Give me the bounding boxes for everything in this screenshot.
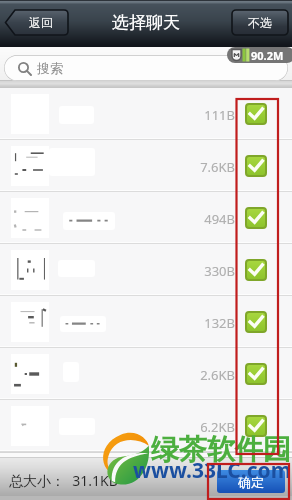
staticText: 7.6KB bbox=[181, 158, 235, 192]
button[interactable]: Selected bbox=[246, 364, 266, 384]
button[interactable]: Memory usage bbox=[227, 47, 292, 63]
button[interactable]: Selected bbox=[246, 156, 266, 176]
staticText: 2.6KB bbox=[181, 366, 235, 400]
staticText: 111B bbox=[181, 106, 235, 140]
staticText: 不选 bbox=[248, 15, 272, 30]
button[interactable]: 330B bbox=[0, 244, 292, 296]
button[interactable]: 搜索 bbox=[4, 55, 288, 81]
button[interactable]: 返回 bbox=[4, 10, 68, 35]
button[interactable]: 2.6KB bbox=[0, 348, 292, 400]
button[interactable]: 494B bbox=[0, 192, 292, 244]
button[interactable]: 7.6KB bbox=[0, 140, 292, 192]
button[interactable]: 6.2KB bbox=[0, 400, 292, 452]
staticText: 返回 bbox=[29, 15, 53, 30]
button[interactable]: Selected bbox=[246, 208, 266, 228]
staticText: 6.2KB bbox=[181, 418, 235, 452]
button[interactable]: Selected bbox=[246, 416, 266, 436]
button[interactable]: 132B bbox=[0, 296, 292, 348]
button[interactable]: 111B bbox=[0, 88, 292, 140]
staticText: 总大小： 31.1KB bbox=[9, 471, 118, 490]
staticText: www.33LC.com bbox=[133, 456, 292, 485]
button[interactable]: 确定 bbox=[217, 470, 285, 493]
staticText: 搜索 bbox=[37, 60, 63, 76]
staticText: 确定 bbox=[238, 474, 264, 490]
button[interactable]: Selected bbox=[246, 104, 266, 124]
staticText: 选择聊天 bbox=[112, 12, 180, 33]
staticText: 90.2M bbox=[251, 48, 284, 63]
staticText: 494B bbox=[181, 210, 235, 244]
staticText: 绿茶软件园 bbox=[151, 432, 291, 467]
button[interactable]: 不选 bbox=[232, 10, 288, 35]
staticText: 132B bbox=[181, 314, 235, 348]
button[interactable]: Selected bbox=[246, 260, 266, 280]
button[interactable]: Selected bbox=[246, 312, 266, 332]
staticText: 330B bbox=[181, 262, 235, 296]
